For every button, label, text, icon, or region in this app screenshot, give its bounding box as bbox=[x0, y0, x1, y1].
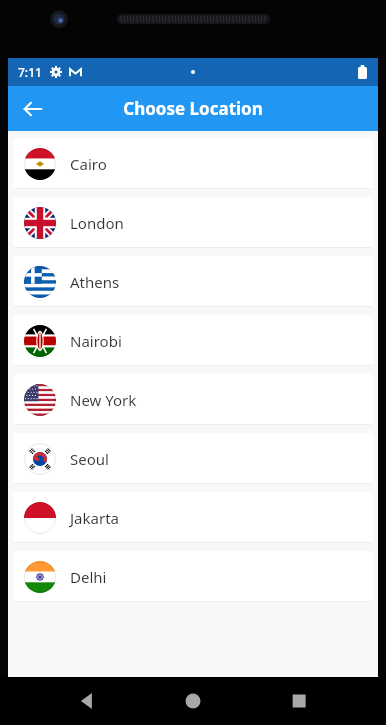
staticText: New York bbox=[70, 390, 137, 410]
button[interactable]: Cairo bbox=[13, 138, 373, 189]
staticText: Delhi bbox=[70, 567, 107, 587]
button[interactable]: Back bbox=[14, 90, 52, 128]
staticText: Jakarta bbox=[70, 508, 119, 528]
button[interactable]: Nairobi bbox=[13, 315, 373, 366]
button[interactable]: New York bbox=[13, 374, 373, 425]
button[interactable]: Jakarta bbox=[13, 492, 373, 543]
staticText: Athens bbox=[70, 272, 120, 292]
staticText: Seoul bbox=[70, 449, 109, 469]
button[interactable]: Delhi bbox=[13, 551, 373, 602]
button[interactable]: Athens bbox=[13, 256, 373, 307]
staticText: Nairobi bbox=[70, 331, 122, 351]
button[interactable]: Seoul bbox=[13, 433, 373, 484]
button[interactable]: London bbox=[13, 197, 373, 248]
staticText: London bbox=[70, 213, 124, 233]
staticText: Cairo bbox=[70, 154, 107, 174]
staticText: 7:11 bbox=[18, 64, 42, 80]
staticText: Choose Location bbox=[123, 97, 263, 120]
